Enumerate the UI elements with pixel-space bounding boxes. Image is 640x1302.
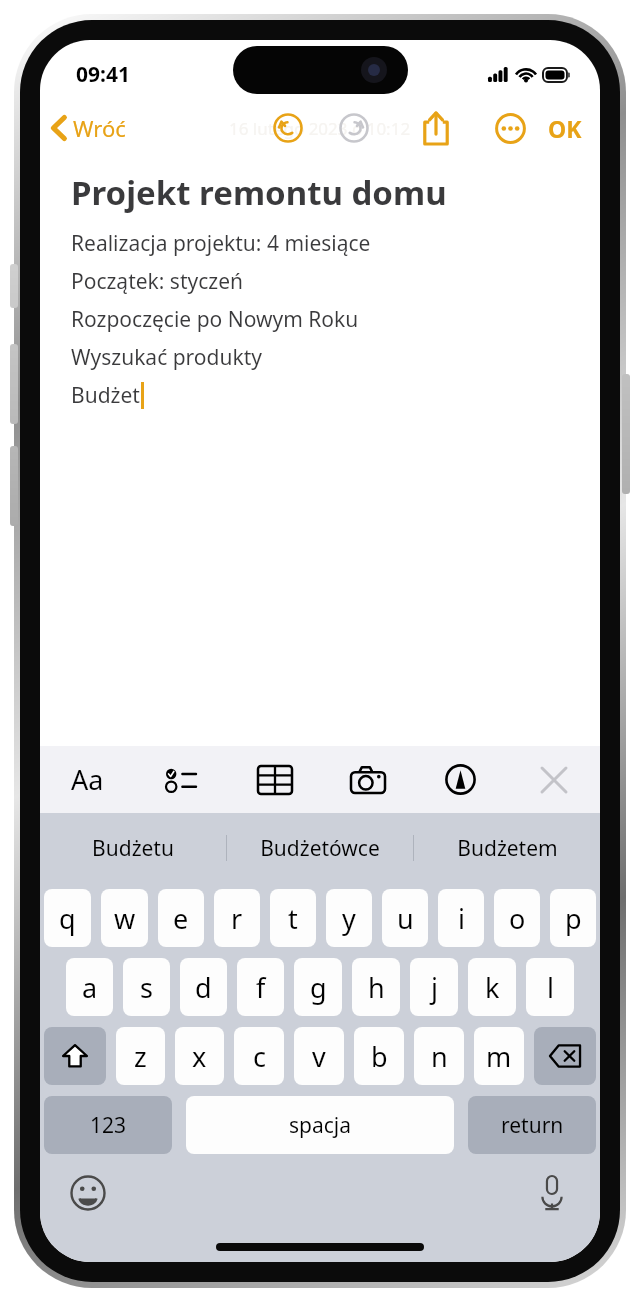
staticText: 09:41 bbox=[76, 60, 130, 89]
button[interactable]: Undo bbox=[266, 106, 310, 150]
button[interactable]: v bbox=[294, 1027, 344, 1085]
staticText: spacja bbox=[289, 1111, 352, 1140]
button[interactable]: Budżetu bbox=[40, 813, 226, 883]
button[interactable]: Redo bbox=[332, 106, 376, 150]
staticText: 16 lutego 2023 o 10:12 bbox=[229, 117, 411, 140]
button[interactable]: w bbox=[101, 889, 148, 947]
staticText: Budżetem bbox=[457, 834, 558, 863]
staticText: t bbox=[288, 900, 298, 937]
staticText: Wróć bbox=[73, 113, 126, 143]
staticText: Wyszukać produkty bbox=[71, 343, 262, 372]
staticText: e bbox=[173, 900, 189, 937]
button[interactable]: Wróć bbox=[40, 109, 136, 147]
staticText: v bbox=[312, 1038, 326, 1075]
button[interactable]: Budżetówce bbox=[227, 813, 413, 883]
button[interactable]: q bbox=[44, 889, 91, 947]
staticText: m bbox=[486, 1038, 512, 1075]
staticText: r bbox=[231, 900, 243, 937]
button[interactable]: g bbox=[294, 958, 342, 1016]
staticText: n bbox=[431, 1038, 448, 1075]
button[interactable]: p bbox=[550, 889, 596, 947]
button[interactable]: b bbox=[354, 1027, 404, 1085]
button[interactable]: Emoji bbox=[62, 1167, 114, 1219]
button[interactable]: m bbox=[474, 1027, 524, 1085]
button[interactable]: h bbox=[352, 958, 400, 1016]
button[interactable]: spacja bbox=[186, 1096, 454, 1154]
button[interactable]: Shift bbox=[44, 1027, 106, 1085]
button[interactable]: f bbox=[237, 958, 284, 1016]
staticText: b bbox=[371, 1038, 388, 1075]
staticText: Projekt remontu domu bbox=[71, 170, 447, 215]
button[interactable]: Share bbox=[414, 106, 458, 150]
staticText: u bbox=[397, 900, 414, 937]
staticText: f bbox=[256, 969, 266, 1006]
button[interactable]: Checklist bbox=[134, 746, 228, 813]
button[interactable]: i bbox=[438, 889, 484, 947]
staticText: return bbox=[501, 1111, 564, 1140]
staticText: q bbox=[59, 900, 76, 937]
button[interactable]: 123 bbox=[44, 1096, 172, 1154]
button[interactable]: z bbox=[116, 1027, 165, 1085]
button[interactable]: k bbox=[468, 958, 516, 1016]
button[interactable]: t bbox=[270, 889, 316, 947]
staticText: d bbox=[195, 969, 212, 1006]
button[interactable]: OK bbox=[538, 107, 592, 150]
button[interactable]: r bbox=[214, 889, 260, 947]
staticText: k bbox=[485, 969, 500, 1006]
staticText: s bbox=[140, 969, 153, 1006]
staticText: w bbox=[114, 900, 136, 937]
staticText: Budżet bbox=[71, 381, 140, 410]
staticText: OK bbox=[548, 113, 582, 144]
button[interactable]: x bbox=[175, 1027, 224, 1085]
staticText: c bbox=[253, 1038, 266, 1075]
staticText: i bbox=[458, 900, 465, 937]
staticText: 123 bbox=[90, 1111, 127, 1140]
button[interactable]: a bbox=[66, 958, 113, 1016]
button[interactable]: Backspace bbox=[534, 1027, 596, 1085]
button[interactable]: c bbox=[234, 1027, 284, 1085]
staticText: Realizacja projektu: 4 miesiące bbox=[71, 229, 371, 258]
staticText: o bbox=[509, 900, 526, 937]
button[interactable]: Markup bbox=[414, 746, 507, 813]
staticText: Budżetówce bbox=[260, 834, 380, 863]
staticText: x bbox=[192, 1038, 207, 1075]
staticText: z bbox=[134, 1038, 147, 1075]
button[interactable]: Budżetem bbox=[414, 813, 600, 883]
button[interactable]: Dictate bbox=[526, 1167, 578, 1219]
button[interactable]: d bbox=[180, 958, 227, 1016]
button[interactable]: More bbox=[488, 106, 532, 150]
button[interactable]: Table bbox=[228, 746, 321, 813]
button[interactable]: y bbox=[326, 889, 372, 947]
staticText: p bbox=[565, 900, 582, 937]
staticText: h bbox=[368, 969, 385, 1006]
button[interactable]: l bbox=[526, 958, 574, 1016]
button[interactable]: j bbox=[410, 958, 458, 1016]
staticText: y bbox=[342, 900, 356, 937]
button[interactable]: e bbox=[158, 889, 204, 947]
button[interactable]: Camera bbox=[321, 746, 414, 813]
button[interactable]: s bbox=[123, 958, 170, 1016]
button[interactable]: u bbox=[382, 889, 428, 947]
staticText: Początek: styczeń bbox=[71, 267, 243, 296]
button[interactable]: Close bbox=[507, 746, 600, 813]
staticText: j bbox=[431, 969, 438, 1006]
button[interactable]: Text format bbox=[40, 746, 134, 813]
staticText: Budżetu bbox=[92, 834, 174, 863]
staticText: a bbox=[82, 969, 98, 1006]
button[interactable]: n bbox=[414, 1027, 464, 1085]
button[interactable]: return bbox=[468, 1096, 596, 1154]
staticText: Rozpoczęcie po Nowym Roku bbox=[71, 305, 359, 334]
staticText: g bbox=[310, 969, 327, 1006]
staticText: Aa bbox=[71, 761, 104, 798]
staticText: l bbox=[547, 969, 554, 1006]
button[interactable]: o bbox=[494, 889, 540, 947]
